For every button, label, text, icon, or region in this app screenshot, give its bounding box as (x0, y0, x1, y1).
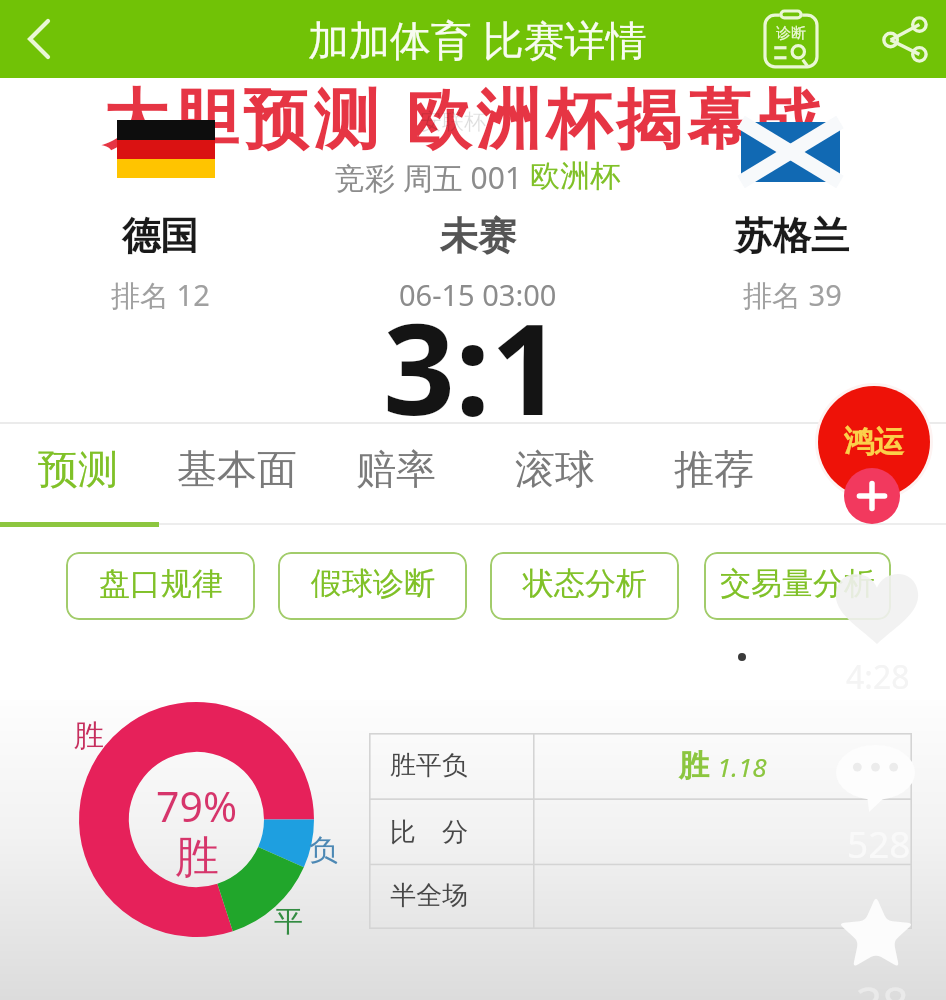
staticText: 大胆预测 欧洲杯揭幕战 (103, 73, 828, 162)
staticText: 半全场 (390, 879, 468, 912)
staticText: 诊断 (776, 24, 806, 43)
button[interactable]: 情报 (793, 424, 946, 527)
staticText: 排名 39 (743, 275, 842, 315)
staticText: 胜平负 (390, 749, 468, 782)
staticText: 状态分析 (523, 564, 647, 603)
button[interactable]: 假球诊断 (278, 552, 467, 620)
staticText: 38 (856, 972, 909, 1000)
staticText: 平 (274, 903, 303, 940)
button[interactable]: 赔率 (316, 424, 475, 527)
staticText: 1.18 (717, 749, 767, 784)
button[interactable]: Lucky bonus (818, 386, 930, 498)
staticText: 苏格兰 (735, 212, 849, 260)
staticText: 竞彩 周五 001 (335, 157, 530, 198)
staticText: 交易量分析 (720, 564, 875, 603)
staticText: 79% (156, 778, 237, 834)
staticText: 赔率 (356, 444, 436, 494)
staticText: 欧洲杯 (530, 157, 620, 195)
button[interactable]: 推荐 (634, 424, 793, 527)
staticText: 胜 (175, 830, 219, 885)
staticText: 假球诊断 (311, 564, 435, 603)
button[interactable]: 预测 (0, 424, 157, 527)
button[interactable]: 盘口规律 (66, 552, 255, 620)
staticText: 推荐 (674, 444, 754, 494)
button[interactable]: 滚球 (475, 424, 634, 527)
staticText: 未赛 (440, 212, 516, 260)
staticText: 负 (309, 832, 338, 869)
staticText: 06-15 03:00 (399, 275, 557, 314)
staticText: 安联杯 (420, 108, 486, 136)
staticText: 德国 (122, 212, 198, 260)
staticText: 排名 12 (111, 275, 210, 315)
staticText: 比 分 (390, 813, 468, 849)
button[interactable]: Diagnose (752, 0, 830, 78)
staticText: 胜 (679, 747, 709, 785)
staticText: 528 (847, 818, 911, 868)
staticText: 盘口规律 (99, 564, 223, 603)
button[interactable]: 基本面 (157, 424, 316, 527)
staticText: 3:1 (383, 280, 563, 452)
button[interactable]: 交易量分析 (704, 552, 891, 620)
staticText: 情报 (833, 444, 913, 494)
button[interactable]: 状态分析 (490, 552, 679, 620)
staticText: 滚球 (515, 444, 595, 494)
staticText: 胜 (74, 717, 104, 755)
button[interactable]: Back (0, 0, 78, 78)
staticText: 加加体育 比赛详情 (308, 11, 647, 67)
button[interactable]: Share (866, 0, 944, 78)
staticText: 基本面 (177, 444, 297, 494)
staticText: 鸿运 (844, 423, 904, 461)
staticText: 预测 (38, 444, 118, 494)
staticText: 4:28 (846, 655, 910, 699)
button[interactable]: Add (844, 468, 900, 524)
